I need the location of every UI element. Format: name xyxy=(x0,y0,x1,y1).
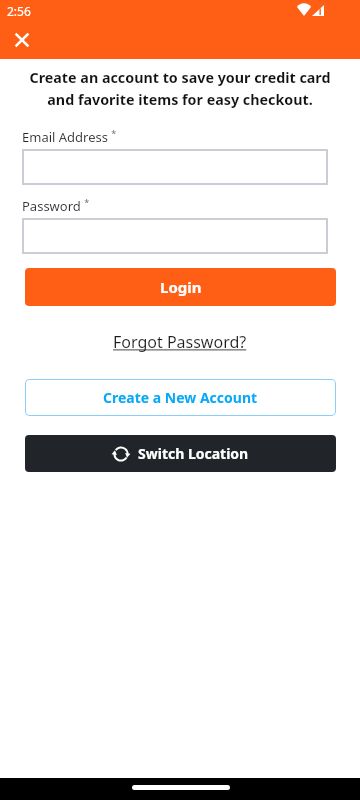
staticText: Create a New Account xyxy=(103,388,258,407)
button[interactable]: Forgot Password? xyxy=(113,331,247,353)
staticText: Password * xyxy=(22,196,90,214)
staticText: Switch Location xyxy=(138,444,249,463)
button[interactable]: Switch Location xyxy=(25,435,336,472)
button[interactable]: Create a New Account xyxy=(25,379,336,416)
staticText: Email Address * xyxy=(22,127,117,145)
staticText: Login xyxy=(160,277,202,297)
button[interactable]: Close xyxy=(4,22,40,58)
staticText: 2:56 xyxy=(7,3,31,19)
button[interactable]: Login xyxy=(25,268,336,306)
staticText: Create an account to save your credit ca… xyxy=(12,68,348,109)
